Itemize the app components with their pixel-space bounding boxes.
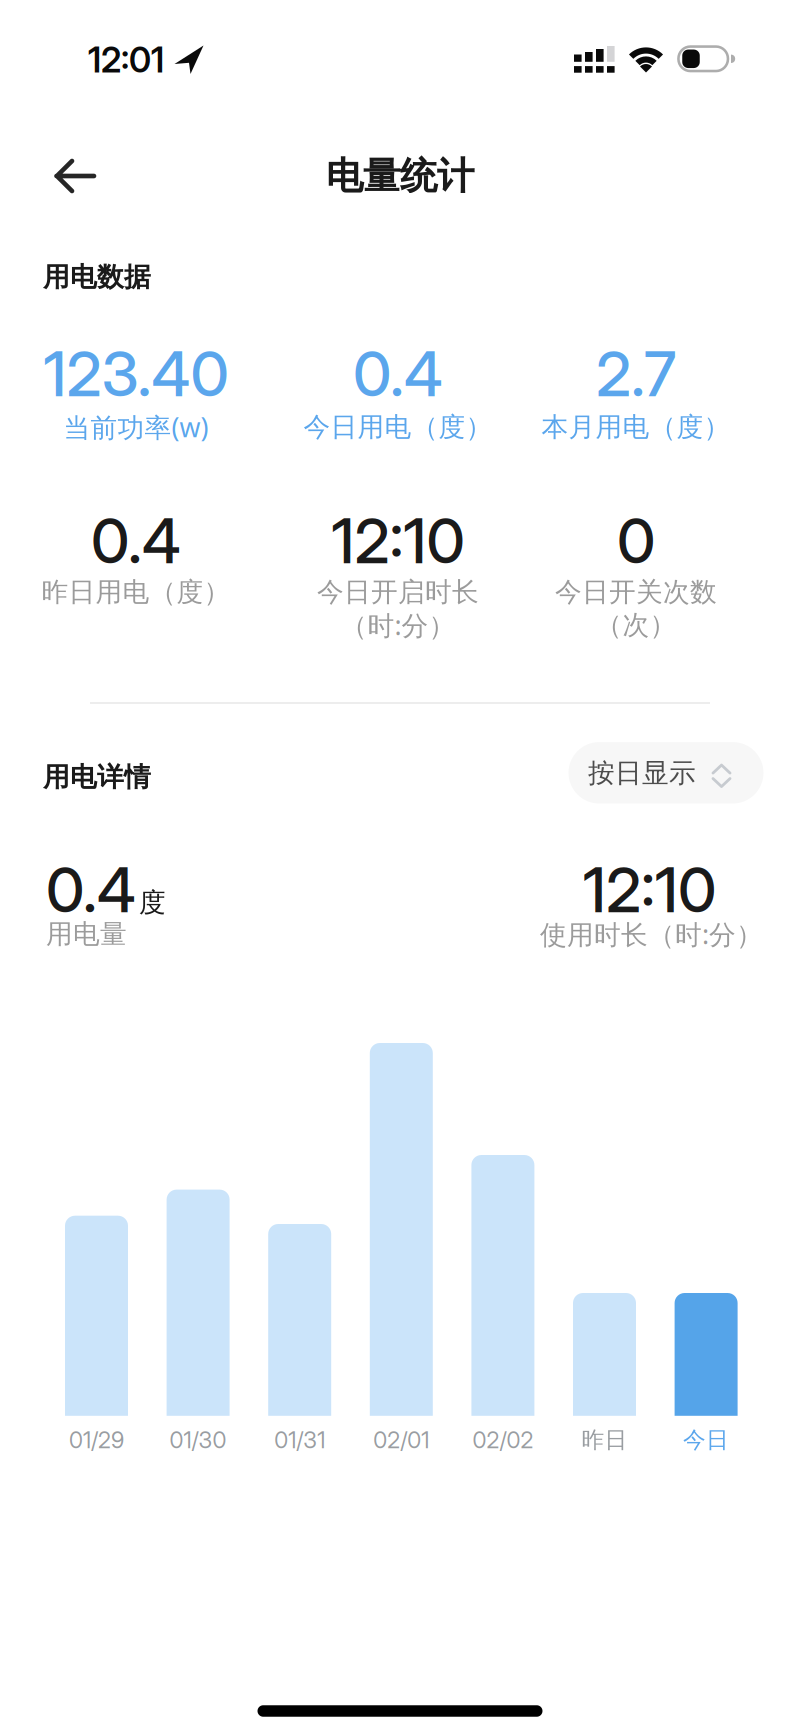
staticText: 2.7 bbox=[596, 337, 676, 411]
staticText: 0.4 bbox=[46, 853, 136, 927]
staticText: 昨日用电（度） bbox=[41, 576, 230, 608]
staticText: 0.4 bbox=[91, 504, 181, 578]
staticText: 按日显示 bbox=[588, 757, 696, 789]
button[interactable]: 按日显示 bbox=[568, 742, 763, 803]
staticText: 当前功率(w) bbox=[63, 409, 208, 445]
staticText: 使用时长（时:分） bbox=[540, 916, 763, 952]
staticText: 今日 bbox=[683, 1426, 729, 1454]
staticText: 0.4 bbox=[353, 337, 443, 411]
staticText: 12:01 bbox=[88, 39, 164, 81]
staticText: 电量统计 bbox=[326, 153, 474, 199]
staticText: 12:10 bbox=[583, 853, 716, 927]
staticText: 昨日 bbox=[581, 1426, 627, 1454]
staticText: 02/01 bbox=[373, 1426, 429, 1454]
staticText: 02/02 bbox=[472, 1426, 533, 1454]
staticText: 今日用电（度） bbox=[303, 411, 492, 443]
staticText: 度 bbox=[139, 886, 166, 919]
staticText: 用电量 bbox=[46, 918, 127, 950]
staticText: 0 bbox=[617, 504, 655, 578]
staticText: 用电详情 bbox=[43, 761, 151, 793]
staticText: 今日开关次数 bbox=[555, 576, 717, 608]
staticText: 123.40 bbox=[43, 337, 228, 411]
staticText: 今日开启时长 bbox=[317, 576, 479, 608]
button[interactable] bbox=[51, 152, 99, 200]
staticText: 用电数据 bbox=[43, 261, 151, 293]
staticText: 12:10 bbox=[331, 504, 464, 578]
staticText: 本月用电（度） bbox=[541, 411, 730, 443]
staticText: （时:分） bbox=[340, 607, 455, 643]
staticText: 01/29 bbox=[69, 1426, 124, 1454]
staticText: 01/30 bbox=[170, 1426, 227, 1454]
staticText: （次） bbox=[595, 609, 676, 641]
staticText: 01/31 bbox=[274, 1426, 325, 1454]
